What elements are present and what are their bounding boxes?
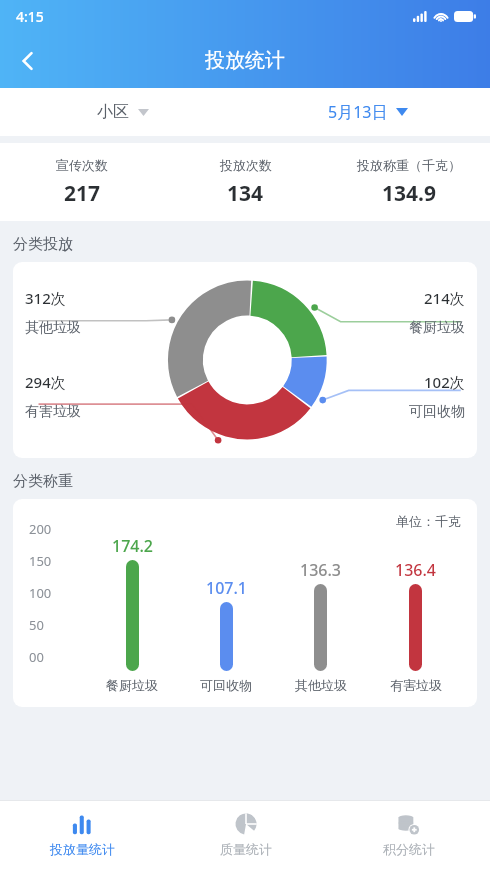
staticText: 50 <box>29 616 44 634</box>
button[interactable]: 积分统计 <box>327 801 490 876</box>
staticText: 5月13日 <box>328 101 388 123</box>
staticText: 174.2 <box>112 535 153 557</box>
staticText: 214次 <box>424 288 465 308</box>
button[interactable]: 5月13日 <box>245 88 490 136</box>
staticText: 分类投放 <box>13 235 73 254</box>
staticText: 有害垃圾 <box>25 403 81 421</box>
staticText: 积分统计 <box>383 841 435 857</box>
button[interactable]: 312次 <box>13 262 477 458</box>
staticText: 100 <box>29 584 52 602</box>
staticText: 质量统计 <box>220 841 272 857</box>
staticText: 投放称重（千克） <box>357 157 461 173</box>
staticText: 136.4 <box>395 559 436 581</box>
staticText: 200 <box>29 520 52 538</box>
staticText: 投放统计 <box>205 48 285 73</box>
staticText: 136.3 <box>300 559 341 581</box>
staticText: 可回收物 <box>409 403 465 421</box>
staticText: 可回收物 <box>200 677 252 693</box>
staticText: 有害垃圾 <box>390 677 442 693</box>
staticText: 134 <box>227 179 264 208</box>
staticText: 投放次数 <box>220 157 272 173</box>
button[interactable]: 单位：千克 <box>13 499 477 707</box>
staticText: 单位：千克 <box>396 513 461 529</box>
button[interactable]: 宣传次数 <box>0 143 164 221</box>
staticText: 102次 <box>424 372 465 392</box>
button[interactable]: 投放次数 <box>164 143 327 221</box>
staticText: 312次 <box>25 288 66 308</box>
staticText: 217 <box>64 179 101 208</box>
button[interactable]: 小区 <box>0 88 245 136</box>
button[interactable]: 质量统计 <box>164 801 327 876</box>
staticText: 餐厨垃圾 <box>409 319 465 337</box>
staticText: 小区 <box>97 102 129 122</box>
button[interactable]: 投放量统计 <box>0 801 164 876</box>
staticText: 餐厨垃圾 <box>106 677 158 693</box>
staticText: 投放量统计 <box>50 841 115 857</box>
staticText: 150 <box>29 552 52 570</box>
button[interactable]: Back <box>4 37 52 85</box>
staticText: 分类称重 <box>13 472 73 491</box>
staticText: 134.9 <box>382 179 436 208</box>
staticText: 其他垃圾 <box>25 319 81 337</box>
staticText: 107.1 <box>206 577 247 599</box>
staticText: 00 <box>29 648 44 666</box>
staticText: 宣传次数 <box>56 157 108 173</box>
staticText: 4:15 <box>16 7 44 26</box>
button[interactable]: 投放称重（千克） <box>327 143 490 221</box>
staticText: 其他垃圾 <box>295 677 347 693</box>
staticText: 294次 <box>25 372 66 392</box>
